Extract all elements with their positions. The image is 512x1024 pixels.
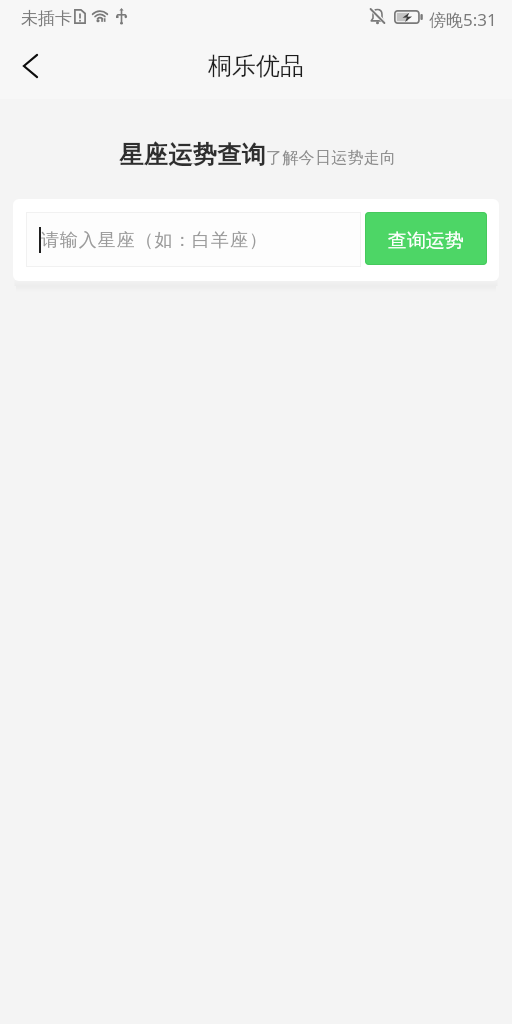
staticText: 桐乐优品 bbox=[208, 51, 304, 81]
button[interactable]: Back bbox=[8, 47, 52, 91]
button[interactable]: 请输入星座（如：白羊座） bbox=[26, 212, 361, 267]
staticText: 了解今日运势走向 bbox=[266, 148, 397, 168]
staticText: 星座运势查询 bbox=[119, 140, 266, 170]
staticText: 查询运势 bbox=[388, 229, 464, 253]
staticText: 请输入星座（如：白羊座） bbox=[41, 229, 268, 252]
staticText: 未插卡 bbox=[21, 8, 72, 29]
staticText: 傍晚5:31 bbox=[429, 8, 497, 31]
button[interactable]: 查询运势 bbox=[365, 212, 487, 265]
